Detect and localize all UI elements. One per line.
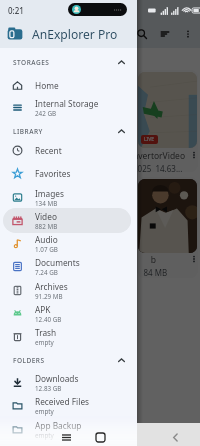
staticText: LIVE (144, 136, 155, 143)
staticText: Images (35, 188, 64, 199)
button[interactable]: Audio (3, 231, 131, 256)
staticText: Home (35, 80, 59, 91)
button[interactable]: LIVE (138, 72, 197, 148)
button[interactable]: APK (3, 301, 131, 326)
staticText: 84 MB (133, 267, 168, 278)
staticText: Documents (35, 257, 80, 268)
staticText: Downloads (35, 373, 79, 384)
staticText: Recent (35, 145, 62, 156)
button[interactable]: Search (133, 25, 151, 43)
button[interactable]: Back (166, 428, 184, 446)
staticText: Internal Storage (35, 98, 99, 109)
staticText: nvertorVideo (133, 150, 186, 162)
staticText: 882 MB (35, 222, 58, 231)
staticText: 12.83 GB (35, 384, 62, 393)
staticText: 242 GB (35, 109, 57, 118)
staticText: 7.24 GB (35, 268, 58, 277)
staticText: Received Files (35, 396, 90, 407)
button[interactable]: Item options (189, 150, 199, 160)
staticText: 134 MB (35, 199, 58, 208)
staticText: LIBRARY (13, 127, 43, 136)
staticText: Archives (35, 281, 68, 292)
button[interactable]: Recent (3, 138, 131, 163)
staticText: 12.40 GB (35, 315, 62, 324)
button[interactable]: Video (3, 208, 131, 233)
button[interactable]: More options (179, 25, 197, 43)
staticText: FOLDERS (13, 356, 45, 365)
button[interactable]: Recents (57, 428, 75, 446)
button[interactable]: Downloads (3, 370, 131, 395)
staticText: AnExplorer Pro (32, 26, 118, 42)
staticText: Trash (35, 327, 57, 338)
button[interactable]: Images (3, 185, 131, 210)
staticText: STORAGES (13, 58, 50, 67)
button[interactable]: AnExplorer Pro (0, 20, 137, 48)
staticText: Favorites (35, 168, 71, 179)
button[interactable]: Documents (3, 254, 131, 279)
button[interactable]: Received Files (3, 393, 131, 418)
staticText: 2025 14.63... (133, 163, 183, 174)
button[interactable]: Home (91, 428, 109, 446)
staticText: Video (35, 211, 57, 222)
button[interactable]: Internal Storage (3, 95, 131, 120)
staticText: APK (35, 304, 51, 315)
staticText: Audio (35, 234, 58, 245)
staticText: 1.07 GB (35, 245, 58, 254)
staticText: empty (35, 407, 54, 416)
staticText: b (133, 254, 156, 266)
staticText: App Backup (35, 420, 82, 431)
staticText: 91.29 MB (35, 292, 63, 301)
button[interactable]: Favorites (3, 161, 131, 186)
button[interactable]: Home (3, 73, 131, 98)
button[interactable] (138, 179, 197, 253)
staticText: empty (35, 338, 54, 347)
button[interactable]: Archives (3, 278, 131, 303)
button[interactable]: Item options (189, 254, 199, 264)
button[interactable]: App Backup (3, 417, 131, 442)
staticText: 0:21 (8, 5, 24, 16)
button[interactable]: Sort (156, 25, 174, 43)
button[interactable]: Trash (3, 324, 131, 349)
staticText: empty (35, 431, 54, 440)
